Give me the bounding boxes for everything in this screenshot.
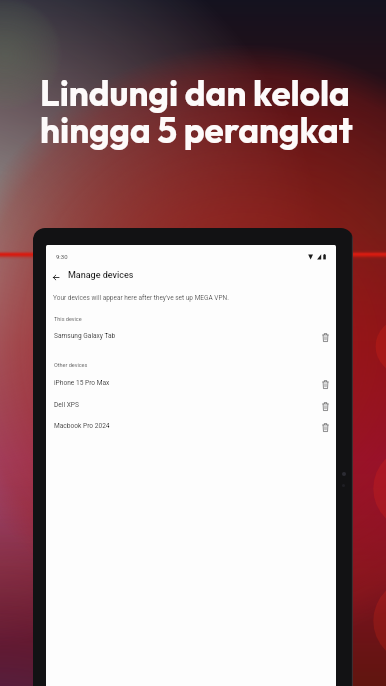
button[interactable]: Back (48, 269, 64, 285)
button[interactable]: Delete Samsung Galaxy Tab (317, 329, 333, 345)
button[interactable]: Dell XPS (46, 396, 336, 417)
button[interactable]: Delete Macbook Pro 2024 (317, 419, 333, 435)
button[interactable]: Samsung Galaxy Tab (46, 327, 336, 348)
staticText: Dell XPS (54, 401, 79, 409)
staticText: Macbook Pro 2024 (54, 422, 110, 430)
button[interactable]: Delete iPhone 15 Pro Max (317, 376, 333, 392)
staticText: Other devices (54, 362, 88, 368)
button[interactable]: iPhone 15 Pro Max (46, 374, 336, 395)
staticText: hingga 5 perangkat (40, 108, 353, 152)
button[interactable]: Macbook Pro 2024 (46, 417, 336, 438)
staticText: Manage devices (68, 270, 134, 281)
staticText: 9:30 (56, 253, 68, 260)
staticText: Samsung Galaxy Tab (54, 332, 116, 340)
staticText: This device (54, 316, 82, 322)
staticText: iPhone 15 Pro Max (54, 379, 110, 387)
staticText: Lindungi dan kelola (40, 71, 350, 115)
staticText: Your devices will appear here after they… (53, 294, 229, 302)
button[interactable]: Delete Dell XPS (317, 398, 333, 414)
